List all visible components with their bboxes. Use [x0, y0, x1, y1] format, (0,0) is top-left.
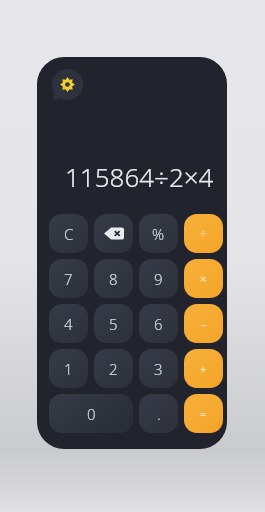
button[interactable]: × [184, 259, 223, 298]
button[interactable]: 1 [49, 349, 88, 388]
button[interactable]: 4 [49, 304, 88, 343]
button[interactable]: 8 [94, 259, 133, 298]
button[interactable]: 3 [139, 349, 178, 388]
button[interactable]: = [184, 394, 223, 433]
button[interactable]: – [184, 304, 223, 343]
button[interactable]: Backspace [94, 214, 133, 253]
button[interactable]: . [139, 394, 178, 433]
staticText: ÷ [200, 226, 207, 241]
staticText: – [201, 316, 207, 331]
staticText: 6 [154, 314, 163, 334]
button[interactable]: Settings [52, 69, 83, 100]
staticText: 2 [109, 359, 118, 379]
staticText: % [152, 224, 165, 244]
staticText: 1 [64, 359, 73, 379]
staticText: 8 [109, 269, 118, 289]
staticText: × [200, 271, 207, 286]
button[interactable]: 2 [94, 349, 133, 388]
staticText: = [200, 406, 207, 421]
staticText: 0 [87, 404, 96, 424]
staticText: + [200, 361, 207, 376]
staticText: C [64, 224, 74, 244]
button[interactable]: ÷ [184, 214, 223, 253]
staticText: 4 [64, 314, 73, 334]
button[interactable]: 7 [49, 259, 88, 298]
button[interactable]: 6 [139, 304, 178, 343]
staticText: . [157, 404, 161, 424]
button[interactable]: 9 [139, 259, 178, 298]
button[interactable]: 0 [49, 394, 133, 433]
staticText: 5 [109, 314, 118, 334]
button[interactable]: C [49, 214, 88, 253]
button[interactable]: 5 [94, 304, 133, 343]
button[interactable]: % [139, 214, 178, 253]
staticText: 115864÷2×4 [65, 159, 214, 194]
staticText: 7 [64, 269, 73, 289]
staticText: 9 [154, 269, 163, 289]
staticText: 3 [154, 359, 163, 379]
button[interactable]: + [184, 349, 223, 388]
